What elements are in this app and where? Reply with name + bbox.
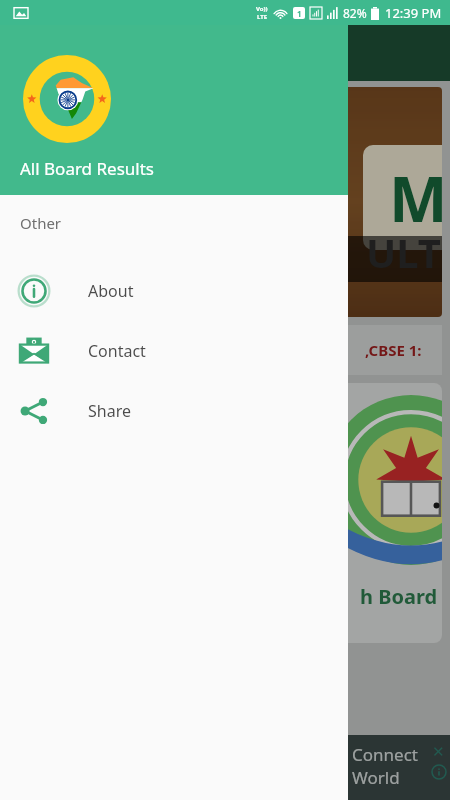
staticText: ULT: [366, 225, 441, 279]
staticText: All Board Results: [20, 157, 154, 180]
staticText: Contact: [88, 340, 146, 362]
staticText: ✕: [432, 743, 445, 760]
staticText: Connect: [352, 743, 418, 766]
staticText: ,CBSE 1:: [365, 340, 422, 360]
staticText: Vo)): [256, 5, 268, 13]
staticText: LTE: [257, 13, 268, 21]
button[interactable]: About: [0, 261, 348, 321]
staticText: M: [389, 156, 442, 240]
button[interactable]: Contact: [0, 321, 348, 381]
staticText: About: [88, 280, 134, 302]
staticText: World: [352, 766, 400, 789]
staticText: 12:39 PM: [385, 4, 442, 22]
staticText: 82%: [343, 5, 367, 21]
staticText: 1: [297, 8, 302, 19]
button[interactable]: Share: [0, 381, 348, 441]
staticText: Share: [88, 400, 131, 422]
staticText: Other: [20, 213, 62, 233]
staticText: h Board: [360, 583, 438, 610]
